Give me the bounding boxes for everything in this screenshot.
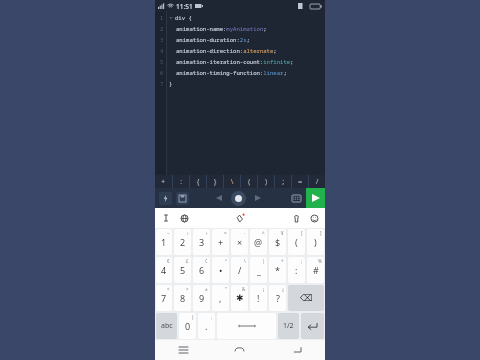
- button[interactable]: Enter: [301, 313, 324, 339]
- button[interactable]: Record: [231, 191, 246, 206]
- button[interactable]: Backspace: [288, 285, 324, 311]
- button[interactable]: !: [250, 285, 267, 311]
- button[interactable]: .: [198, 313, 215, 339]
- button[interactable]: $: [269, 229, 286, 255]
- button[interactable]: 2: [174, 229, 191, 255]
- staticText: ,: [211, 314, 213, 320]
- button[interactable]: Next: [251, 191, 265, 205]
- staticText: #: [313, 264, 319, 276]
- button[interactable]: 0: [179, 313, 196, 339]
- button[interactable]: ✱: [231, 285, 248, 311]
- staticText: •: [219, 264, 223, 276]
- button[interactable]: (: [288, 229, 305, 255]
- staticText: ?: [276, 292, 280, 304]
- button[interactable]: ,: [212, 285, 229, 311]
- staticText: _: [257, 264, 261, 276]
- staticText: 7: [161, 292, 167, 304]
- staticText: 6: [160, 69, 164, 76]
- button[interactable]: +: [212, 229, 229, 255]
- button[interactable]: Format code: [159, 192, 172, 205]
- button[interactable]: 3: [193, 229, 210, 255]
- staticText: @: [254, 236, 263, 248]
- staticText: ): [192, 314, 194, 320]
- button[interactable]: 1: [156, 229, 172, 255]
- button[interactable]: /: [231, 257, 248, 283]
- staticText: :: [179, 177, 184, 187]
- button[interactable]: 5: [174, 257, 191, 283]
- staticText: ·: [244, 230, 246, 236]
- button[interactable]: Space: [217, 313, 276, 339]
- button[interactable]: abc: [156, 313, 177, 339]
- staticText: ): [264, 177, 269, 187]
- button[interactable]: \: [224, 175, 240, 188]
- staticText: ¢: [205, 258, 208, 264]
- staticText: (: [247, 177, 252, 187]
- staticText: animation-timing-function:linear;: [176, 69, 287, 77]
- staticText: ›: [206, 230, 208, 236]
- button[interactable]: ;: [275, 175, 291, 188]
- button[interactable]: ): [307, 229, 324, 255]
- staticText: ": [225, 286, 227, 292]
- button[interactable]: @: [250, 229, 267, 255]
- button[interactable]: (: [241, 175, 257, 188]
- staticText: ×: [237, 236, 243, 248]
- button[interactable]: •: [212, 257, 229, 283]
- staticText: +: [161, 177, 166, 187]
- button[interactable]: ): [258, 175, 274, 188]
- button[interactable]: :: [173, 175, 189, 188]
- button[interactable]: 6: [193, 257, 210, 283]
- button[interactable]: 1/2: [278, 313, 299, 339]
- button[interactable]: Back: [268, 340, 325, 360]
- staticText: animation-name:myAnimation;: [176, 25, 267, 33]
- staticText: %: [318, 258, 322, 264]
- staticText: =: [224, 230, 227, 236]
- button[interactable]: Save: [176, 192, 189, 205]
- button[interactable]: ×: [231, 229, 248, 255]
- button[interactable]: Emoji: [308, 212, 320, 224]
- staticText: abc: [161, 321, 173, 331]
- staticText: 11:51: [176, 2, 193, 11]
- staticText: 4: [160, 47, 164, 54]
- staticText: 1/2: [283, 321, 294, 331]
- staticText: ✱: [236, 293, 244, 303]
- button[interactable]: #: [307, 257, 324, 283]
- button[interactable]: Clipboard: [233, 211, 247, 225]
- staticText: |: [262, 258, 265, 264]
- button[interactable]: =: [292, 175, 308, 188]
- staticText: ¥: [281, 230, 284, 236]
- button[interactable]: 8: [174, 285, 191, 311]
- button[interactable]: *: [269, 257, 286, 283]
- staticText: \: [230, 177, 235, 187]
- staticText: 9: [199, 292, 205, 304]
- button[interactable]: +: [155, 175, 172, 188]
- button[interactable]: Language: [178, 212, 190, 224]
- button[interactable]: _: [250, 257, 267, 283]
- button[interactable]: Keyboard: [289, 191, 303, 205]
- button[interactable]: Previous: [212, 191, 226, 205]
- staticText: ;: [281, 177, 286, 187]
- staticText: 3: [199, 236, 205, 248]
- button[interactable]: Home: [211, 340, 268, 360]
- button[interactable]: {: [190, 175, 206, 188]
- staticText: $: [275, 236, 281, 248]
- button[interactable]: /: [309, 175, 325, 188]
- button[interactable]: ?: [269, 285, 286, 311]
- button[interactable]: 9: [193, 285, 210, 311]
- staticText: ~: [167, 230, 170, 236]
- button[interactable]: 7: [156, 285, 172, 311]
- staticText: 3: [160, 36, 164, 43]
- button[interactable]: 4: [156, 257, 172, 283]
- staticText: £: [186, 258, 189, 264]
- staticText: 6: [199, 264, 205, 276]
- button[interactable]: Text edit: [160, 212, 172, 224]
- staticText: }: [213, 177, 218, 187]
- staticText: °: [225, 258, 227, 264]
- button[interactable]: }: [207, 175, 223, 188]
- button[interactable]: Stickers: [290, 212, 302, 224]
- staticText: animation-direction:alternate;: [176, 47, 277, 55]
- button[interactable]: Run: [306, 188, 325, 208]
- staticText: &: [242, 286, 246, 292]
- button[interactable]: Recents: [155, 340, 211, 360]
- button[interactable]: :: [288, 257, 305, 283]
- staticText: +: [281, 258, 284, 264]
